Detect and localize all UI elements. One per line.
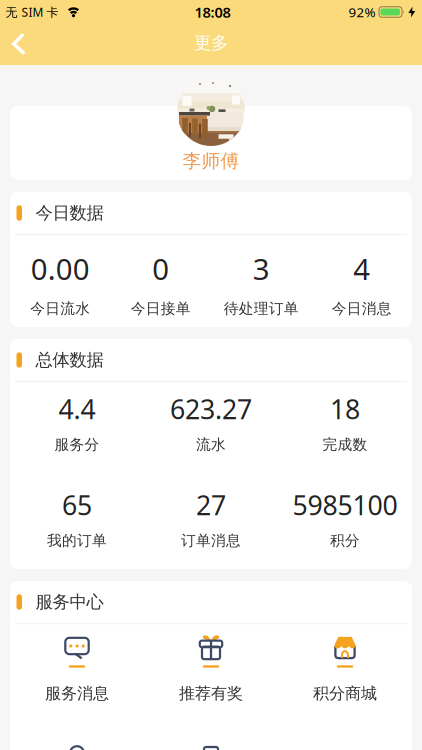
staticText: 5985100 [292, 487, 397, 523]
staticText: 今日接单 [131, 299, 191, 317]
staticText: 推荐有奖 [179, 684, 243, 703]
button[interactable]: 服务消息 [22, 633, 132, 705]
staticText: 0.00 [31, 249, 90, 288]
staticText: 今日消息 [332, 299, 392, 317]
button[interactable]: 推荐有奖 [156, 633, 266, 705]
button[interactable]: 李师傅 [10, 106, 412, 180]
button[interactable]: 积分商城 [290, 633, 400, 705]
staticText: 0 [152, 249, 169, 288]
staticText: 27 [196, 487, 226, 523]
staticText: 623.27 [170, 391, 252, 427]
staticText: 流水 [196, 435, 226, 453]
staticText: 4 [353, 249, 370, 288]
staticText: 李师傅 [182, 149, 239, 172]
staticText: 服务中心 [35, 591, 103, 613]
staticText: 4.4 [58, 391, 95, 427]
staticText: 完成数 [322, 435, 367, 453]
staticText: 更多 [194, 32, 228, 54]
staticText: 65 [62, 487, 92, 523]
staticText: 总体数据 [35, 349, 103, 371]
staticText: 无 SIM 卡 [5, 4, 58, 20]
staticText: 积分商城 [313, 684, 377, 703]
button[interactable]: 返回 [5, 28, 35, 58]
staticText: 服务分 [54, 435, 99, 453]
staticText: 积分 [330, 531, 360, 549]
staticText: 服务消息 [45, 684, 109, 703]
staticText: 今日流水 [30, 299, 90, 317]
button[interactable]: 客服 [70, 746, 84, 750]
button[interactable]: 订单 [204, 747, 218, 750]
staticText: 我的订单 [47, 531, 107, 549]
staticText: 3 [253, 249, 270, 288]
staticText: 92% [348, 3, 375, 21]
staticText: 待处理订单 [224, 299, 299, 317]
staticText: 订单消息 [181, 531, 241, 549]
staticText: 18 [330, 391, 360, 427]
staticText: 18:08 [194, 2, 230, 22]
staticText: 今日数据 [35, 202, 103, 224]
